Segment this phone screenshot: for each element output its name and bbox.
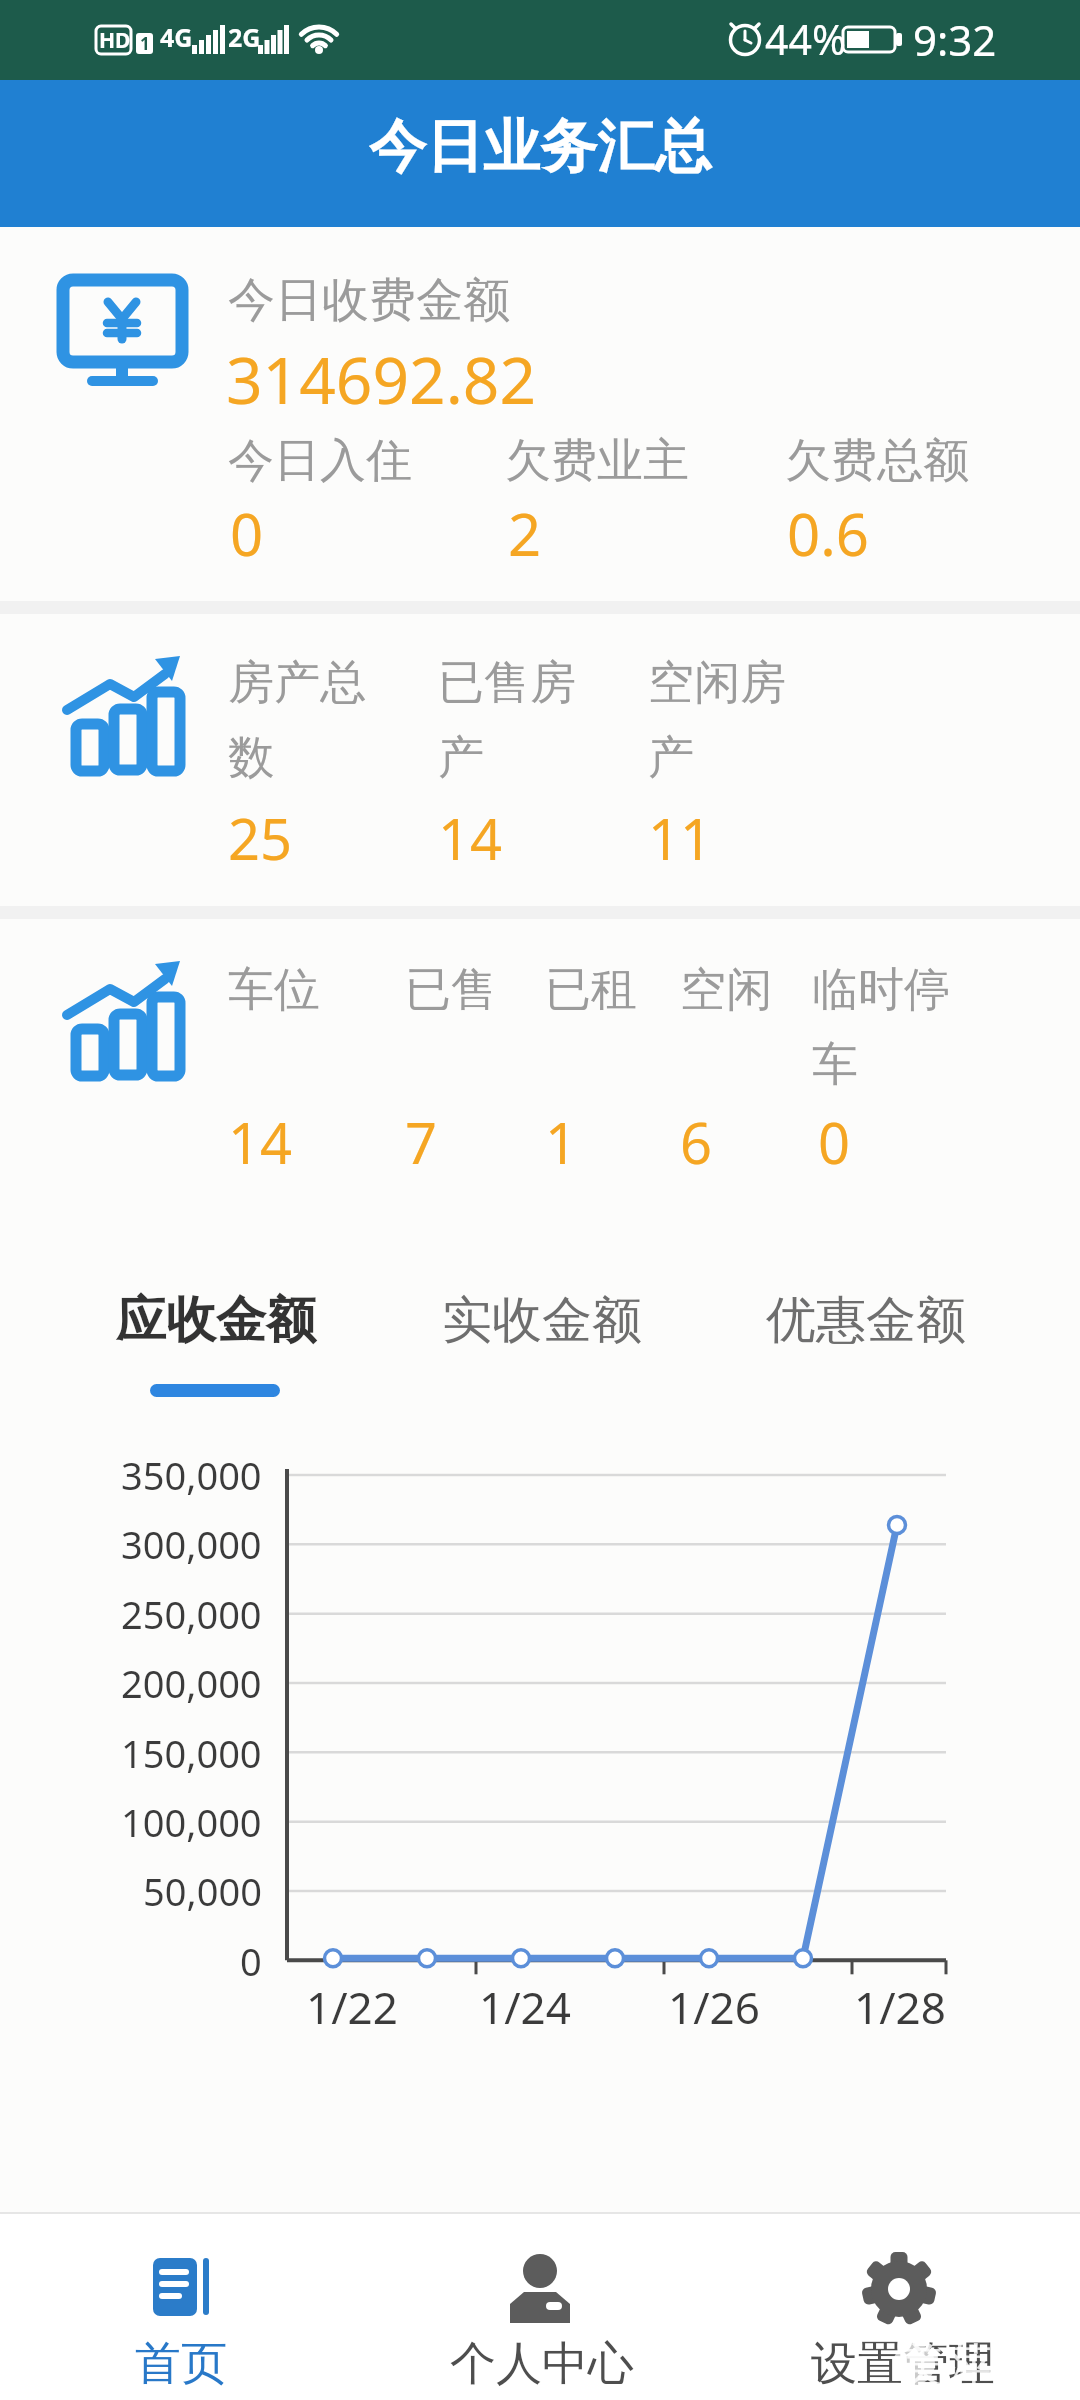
staticText: 应收金额	[116, 1289, 316, 1352]
staticText: 1/28	[854, 1977, 946, 2037]
staticText: 欠费业主	[505, 432, 689, 490]
staticText: 已售房	[438, 654, 576, 712]
staticText: 个人中心	[450, 2335, 634, 2393]
button[interactable]: 实收金额	[432, 1275, 652, 1365]
staticText: 优惠金额	[766, 1289, 966, 1352]
button[interactable]: 应收金额	[106, 1275, 326, 1365]
staticText: 房产总	[228, 654, 366, 712]
staticText: 1/26	[668, 1977, 760, 2037]
staticText: 25	[228, 800, 293, 876]
staticText: 已售	[405, 961, 497, 1019]
staticText: 空闲	[680, 961, 772, 1019]
staticText: 车位	[228, 961, 320, 1019]
staticText: 临时停	[812, 961, 950, 1019]
staticText: 100,000	[121, 1796, 262, 1848]
staticText: 0.6	[787, 494, 869, 573]
staticText: 数	[228, 729, 274, 787]
staticText: 2	[508, 494, 542, 573]
staticText: 200,000	[121, 1657, 262, 1709]
staticText: 350,000	[121, 1449, 262, 1501]
staticText: HD	[99, 26, 131, 55]
staticText: 今日入住	[228, 432, 412, 490]
staticText: 4G	[160, 20, 193, 54]
staticText: 欠费总额	[785, 432, 969, 490]
staticText: 14	[438, 800, 503, 876]
staticText: 50,000	[143, 1865, 262, 1917]
staticText: 美萍软件	[900, 2337, 1080, 2395]
staticText: 产	[648, 729, 694, 787]
staticText: 314692.82	[226, 336, 537, 423]
staticText: 1/24	[479, 1977, 571, 2037]
staticText: 设置管理	[811, 2335, 995, 2393]
staticText: 空闲房	[648, 654, 786, 712]
staticText: 已租	[545, 961, 637, 1019]
staticText: 1	[545, 1104, 578, 1180]
staticText: 首页	[135, 2335, 227, 2393]
staticText: 0	[240, 1935, 262, 1987]
staticText: 今日收费金额	[228, 271, 510, 330]
staticText: 车	[812, 1036, 858, 1094]
button[interactable]	[780, 2222, 1020, 2400]
button[interactable]: 优惠金额	[756, 1275, 976, 1365]
staticText: 1	[140, 32, 150, 55]
staticText: 7	[405, 1104, 438, 1180]
staticText: 0	[230, 494, 264, 573]
staticText: 2G	[228, 20, 261, 54]
staticText: 250,000	[121, 1588, 262, 1640]
button[interactable]	[420, 2222, 660, 2400]
staticText: 0	[818, 1104, 851, 1180]
staticText: 今日业务汇总	[369, 111, 711, 183]
staticText: 9:32	[913, 11, 997, 68]
staticText: 300,000	[121, 1518, 262, 1570]
staticText: 1/22	[306, 1977, 398, 2037]
staticText: 14	[228, 1104, 293, 1180]
button[interactable]	[60, 2222, 300, 2400]
staticText: 6	[680, 1104, 713, 1180]
staticText: 产	[438, 729, 484, 787]
staticText: 150,000	[121, 1727, 262, 1779]
staticText: 11	[648, 800, 713, 876]
staticText: 44%	[765, 11, 846, 67]
staticText: 实收金额	[442, 1289, 642, 1352]
